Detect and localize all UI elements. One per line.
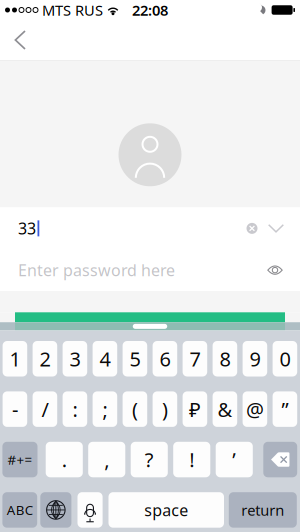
staticText: return	[241, 500, 284, 520]
button[interactable]: Dictation	[77, 492, 103, 528]
button[interactable]: 5	[123, 341, 147, 376]
button[interactable]: ₽	[183, 391, 207, 427]
button[interactable]: Show suggestions	[263, 213, 289, 243]
button[interactable]: 4	[93, 341, 117, 376]
staticText: -	[12, 396, 18, 422]
staticText: /	[41, 396, 48, 422]
button[interactable]: )	[153, 391, 177, 427]
button[interactable]: ”	[273, 391, 297, 427]
button[interactable]: ;	[93, 391, 117, 427]
staticText: .	[62, 446, 67, 473]
button[interactable]: 9	[243, 341, 267, 376]
button[interactable]: 2	[33, 341, 57, 376]
button[interactable]: 1	[3, 341, 27, 376]
button[interactable]: 3	[63, 341, 87, 376]
button[interactable]: 8	[213, 341, 237, 376]
button[interactable]: (	[123, 391, 147, 427]
staticText: Enter password here	[18, 259, 175, 281]
staticText: ;	[102, 396, 107, 422]
staticText: @	[246, 396, 264, 422]
button[interactable]: Delete	[263, 442, 297, 477]
staticText: ₽	[189, 396, 201, 422]
staticText: :	[72, 396, 77, 422]
button[interactable]: !	[173, 442, 210, 477]
staticText: ABC	[7, 501, 33, 519]
staticText: 8	[219, 345, 230, 372]
button[interactable]: -	[3, 391, 27, 427]
staticText: 7	[189, 345, 200, 372]
button[interactable]: ,	[88, 442, 125, 477]
staticText: )	[162, 396, 168, 422]
button[interactable]: /	[33, 391, 57, 427]
staticText: &	[217, 396, 232, 422]
button[interactable]: Back	[0, 20, 40, 60]
staticText: 4	[99, 345, 110, 372]
staticText: space	[144, 499, 188, 520]
staticText: 22:08	[132, 0, 168, 20]
staticText: !	[189, 446, 194, 473]
button[interactable]: Next keyboard	[40, 492, 71, 528]
staticText: #+=	[7, 451, 32, 468]
button[interactable]: :	[63, 391, 87, 427]
button[interactable]: ?	[131, 442, 168, 477]
staticText: ,	[104, 446, 109, 473]
button[interactable]: 0	[273, 341, 297, 376]
staticText: 5	[129, 345, 140, 372]
staticText: 2	[39, 345, 50, 372]
button[interactable]: return	[229, 492, 297, 528]
button[interactable]: @	[243, 391, 267, 427]
button[interactable]: 6	[153, 341, 177, 376]
staticText: 33	[18, 218, 36, 239]
staticText: 9	[249, 345, 260, 372]
staticText: 3	[69, 345, 80, 372]
staticText: ?	[145, 446, 154, 473]
button[interactable]: Symbols	[2, 442, 37, 477]
button[interactable]: Clear text	[241, 213, 263, 243]
staticText: (	[132, 396, 138, 422]
staticText: 0	[279, 345, 290, 372]
staticText: ’	[232, 446, 236, 473]
button[interactable]: 7	[183, 341, 207, 376]
button[interactable]: &	[213, 391, 237, 427]
staticText: ”	[281, 396, 288, 422]
staticText: 1	[9, 345, 20, 372]
button[interactable]: Sign in	[15, 312, 285, 322]
button[interactable]: .	[46, 442, 83, 477]
button[interactable]: Letters	[2, 492, 37, 528]
button[interactable]: ’	[216, 442, 253, 477]
staticText: MTS RUS	[42, 0, 103, 20]
button[interactable]: Show password	[262, 255, 288, 285]
button[interactable]: space	[108, 492, 224, 528]
staticText: 6	[159, 345, 170, 372]
